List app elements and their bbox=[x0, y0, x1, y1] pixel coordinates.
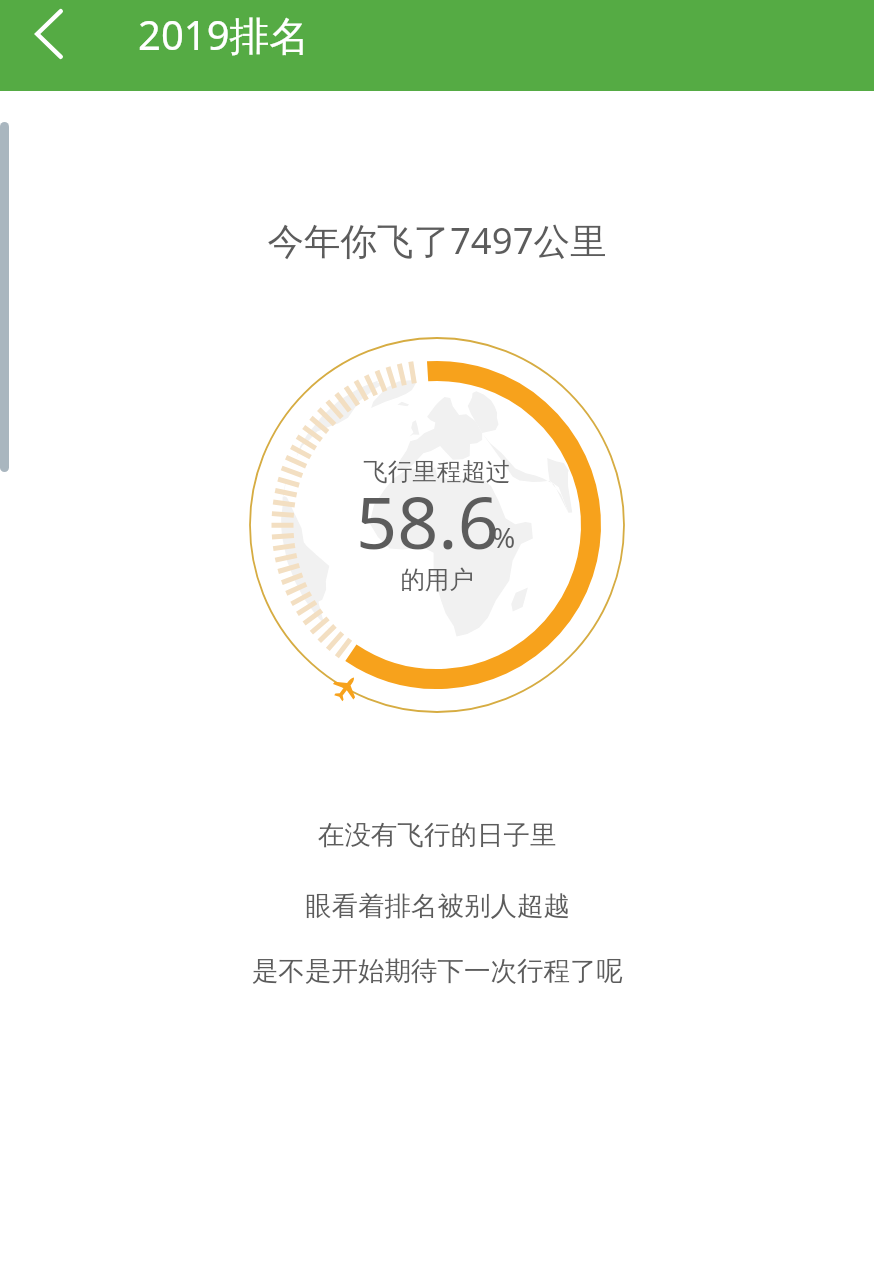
staticText: 58.6 bbox=[356, 472, 499, 570]
staticText: 2019排名 bbox=[138, 7, 310, 62]
staticText: % bbox=[492, 518, 516, 556]
button[interactable]: Back bbox=[0, 0, 100, 91]
staticText: 眼看着排名被别人超越 bbox=[305, 889, 570, 922]
staticText: 飞行里程超过 bbox=[0, 456, 874, 487]
staticText: 是不是开始期待下一次行程了呢 bbox=[252, 954, 623, 987]
staticText: 今年你飞了7497公里 bbox=[0, 215, 874, 265]
staticText: 的用户 bbox=[0, 564, 874, 595]
staticText: 在没有飞行的日子里 bbox=[318, 818, 557, 851]
